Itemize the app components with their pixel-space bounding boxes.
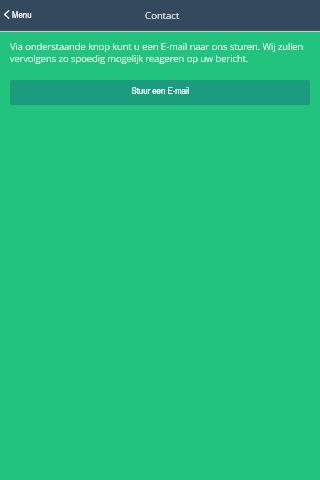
staticText: Via onderstaande knop kunt u een E-mail … (10, 40, 312, 64)
staticText: Stuur een E-mail (131, 84, 190, 97)
staticText: Menu (12, 8, 32, 21)
staticText: Contact (145, 8, 180, 21)
button[interactable]: Back (0, 0, 42, 31)
button[interactable]: Stuur een E-mail (10, 80, 310, 105)
other: Back (4, 10, 9, 19)
